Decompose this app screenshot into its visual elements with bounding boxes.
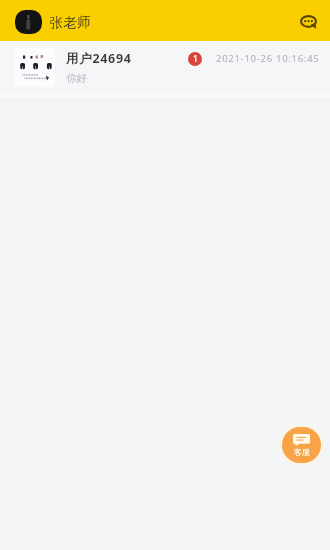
staticText: 你好 [66,72,87,85]
button[interactable]: 用户24694 [0,41,330,97]
button[interactable]: Avatar [15,10,42,34]
staticText: 客服 [294,447,310,457]
staticText: 张老师 [49,14,91,31]
staticText: 1 [193,53,198,65]
button[interactable]: Messages [294,10,316,32]
staticText: 2021-10-26 10:16:45 [216,52,320,65]
button[interactable]: 客服 [282,427,321,463]
staticText: 用户24694 [66,50,132,67]
